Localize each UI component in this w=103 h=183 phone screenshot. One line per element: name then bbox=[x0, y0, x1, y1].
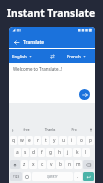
button[interactable]: b bbox=[56, 160, 64, 169]
button[interactable]: f bbox=[38, 148, 45, 157]
staticText: a bbox=[16, 149, 19, 156]
staticText: Thanks bbox=[38, 128, 62, 132]
staticText: i bbox=[71, 137, 73, 144]
staticText: d bbox=[32, 149, 35, 156]
staticText: c bbox=[41, 161, 44, 168]
button[interactable]: w bbox=[18, 136, 25, 145]
staticText: n bbox=[68, 161, 71, 168]
staticText: l bbox=[85, 149, 87, 156]
button[interactable]: e bbox=[26, 136, 33, 145]
staticText: h bbox=[58, 149, 61, 156]
staticText: Pro bbox=[62, 128, 86, 132]
button[interactable]: h bbox=[55, 148, 63, 157]
button[interactable]: n bbox=[65, 160, 73, 169]
staticText: y bbox=[53, 137, 56, 144]
button[interactable]: o bbox=[77, 136, 85, 145]
staticText: k bbox=[76, 149, 79, 156]
staticText: z bbox=[23, 161, 26, 168]
staticText: . bbox=[77, 173, 79, 180]
staticText: r bbox=[37, 137, 39, 144]
button[interactable]: k bbox=[73, 148, 81, 157]
button[interactable]: r bbox=[34, 136, 41, 145]
button[interactable]: Shift bbox=[10, 160, 20, 169]
button[interactable]: t bbox=[42, 136, 49, 145]
staticText: English bbox=[12, 53, 27, 59]
button[interactable]: c bbox=[38, 160, 46, 169]
button[interactable]: Voice input bbox=[86, 124, 95, 136]
staticText: t bbox=[45, 137, 47, 144]
staticText: q bbox=[12, 137, 15, 144]
staticText: e bbox=[28, 137, 31, 144]
staticText: s bbox=[24, 149, 27, 156]
button[interactable]: x bbox=[29, 160, 37, 169]
button[interactable]: y bbox=[50, 136, 58, 145]
button[interactable]: Backspace bbox=[83, 160, 94, 169]
staticText: p bbox=[89, 137, 92, 144]
button[interactable]: i bbox=[68, 136, 76, 145]
staticText: u bbox=[62, 137, 65, 144]
button[interactable]: Swap languages bbox=[46, 50, 58, 62]
button[interactable]: z bbox=[21, 160, 28, 169]
staticText: b bbox=[59, 161, 62, 168]
button[interactable]: . bbox=[74, 172, 82, 181]
button[interactable]: l bbox=[82, 148, 90, 157]
staticText: m bbox=[76, 161, 81, 168]
staticText: x bbox=[32, 161, 35, 168]
button[interactable]: ?123 bbox=[10, 172, 22, 181]
button[interactable]: g bbox=[46, 148, 54, 157]
staticText: French bbox=[67, 53, 81, 59]
staticText: ?123 bbox=[13, 175, 20, 179]
button[interactable]: Space bbox=[32, 172, 73, 181]
button[interactable]: j bbox=[64, 148, 72, 157]
button[interactable]: a bbox=[14, 148, 21, 157]
staticText: v bbox=[50, 161, 53, 168]
button[interactable]: Emoji bbox=[23, 172, 31, 181]
button[interactable]: Back bbox=[11, 37, 21, 47]
button[interactable]: Enter bbox=[83, 172, 94, 181]
staticText: j bbox=[67, 149, 69, 156]
staticText: f bbox=[41, 149, 43, 156]
button[interactable]: m bbox=[74, 160, 82, 169]
button[interactable]: s bbox=[22, 148, 29, 157]
button[interactable]: English bbox=[9, 49, 46, 63]
button[interactable]: Translate bbox=[79, 89, 90, 100]
staticText: Welcome to Translate..! bbox=[13, 66, 63, 72]
button[interactable]: u bbox=[59, 136, 67, 145]
button[interactable]: q bbox=[10, 136, 17, 145]
staticText: Translate bbox=[23, 39, 45, 46]
staticText: QWERTY bbox=[47, 175, 58, 179]
staticText: g bbox=[49, 149, 52, 156]
button[interactable]: French bbox=[58, 49, 95, 63]
staticText: Instant Translate bbox=[7, 6, 96, 20]
button[interactable]: v bbox=[47, 160, 55, 169]
button[interactable]: d bbox=[30, 148, 37, 157]
staticText: free bbox=[15, 128, 38, 132]
staticText: w bbox=[20, 137, 24, 144]
button[interactable]: p bbox=[86, 136, 94, 145]
staticText: o bbox=[80, 137, 83, 144]
